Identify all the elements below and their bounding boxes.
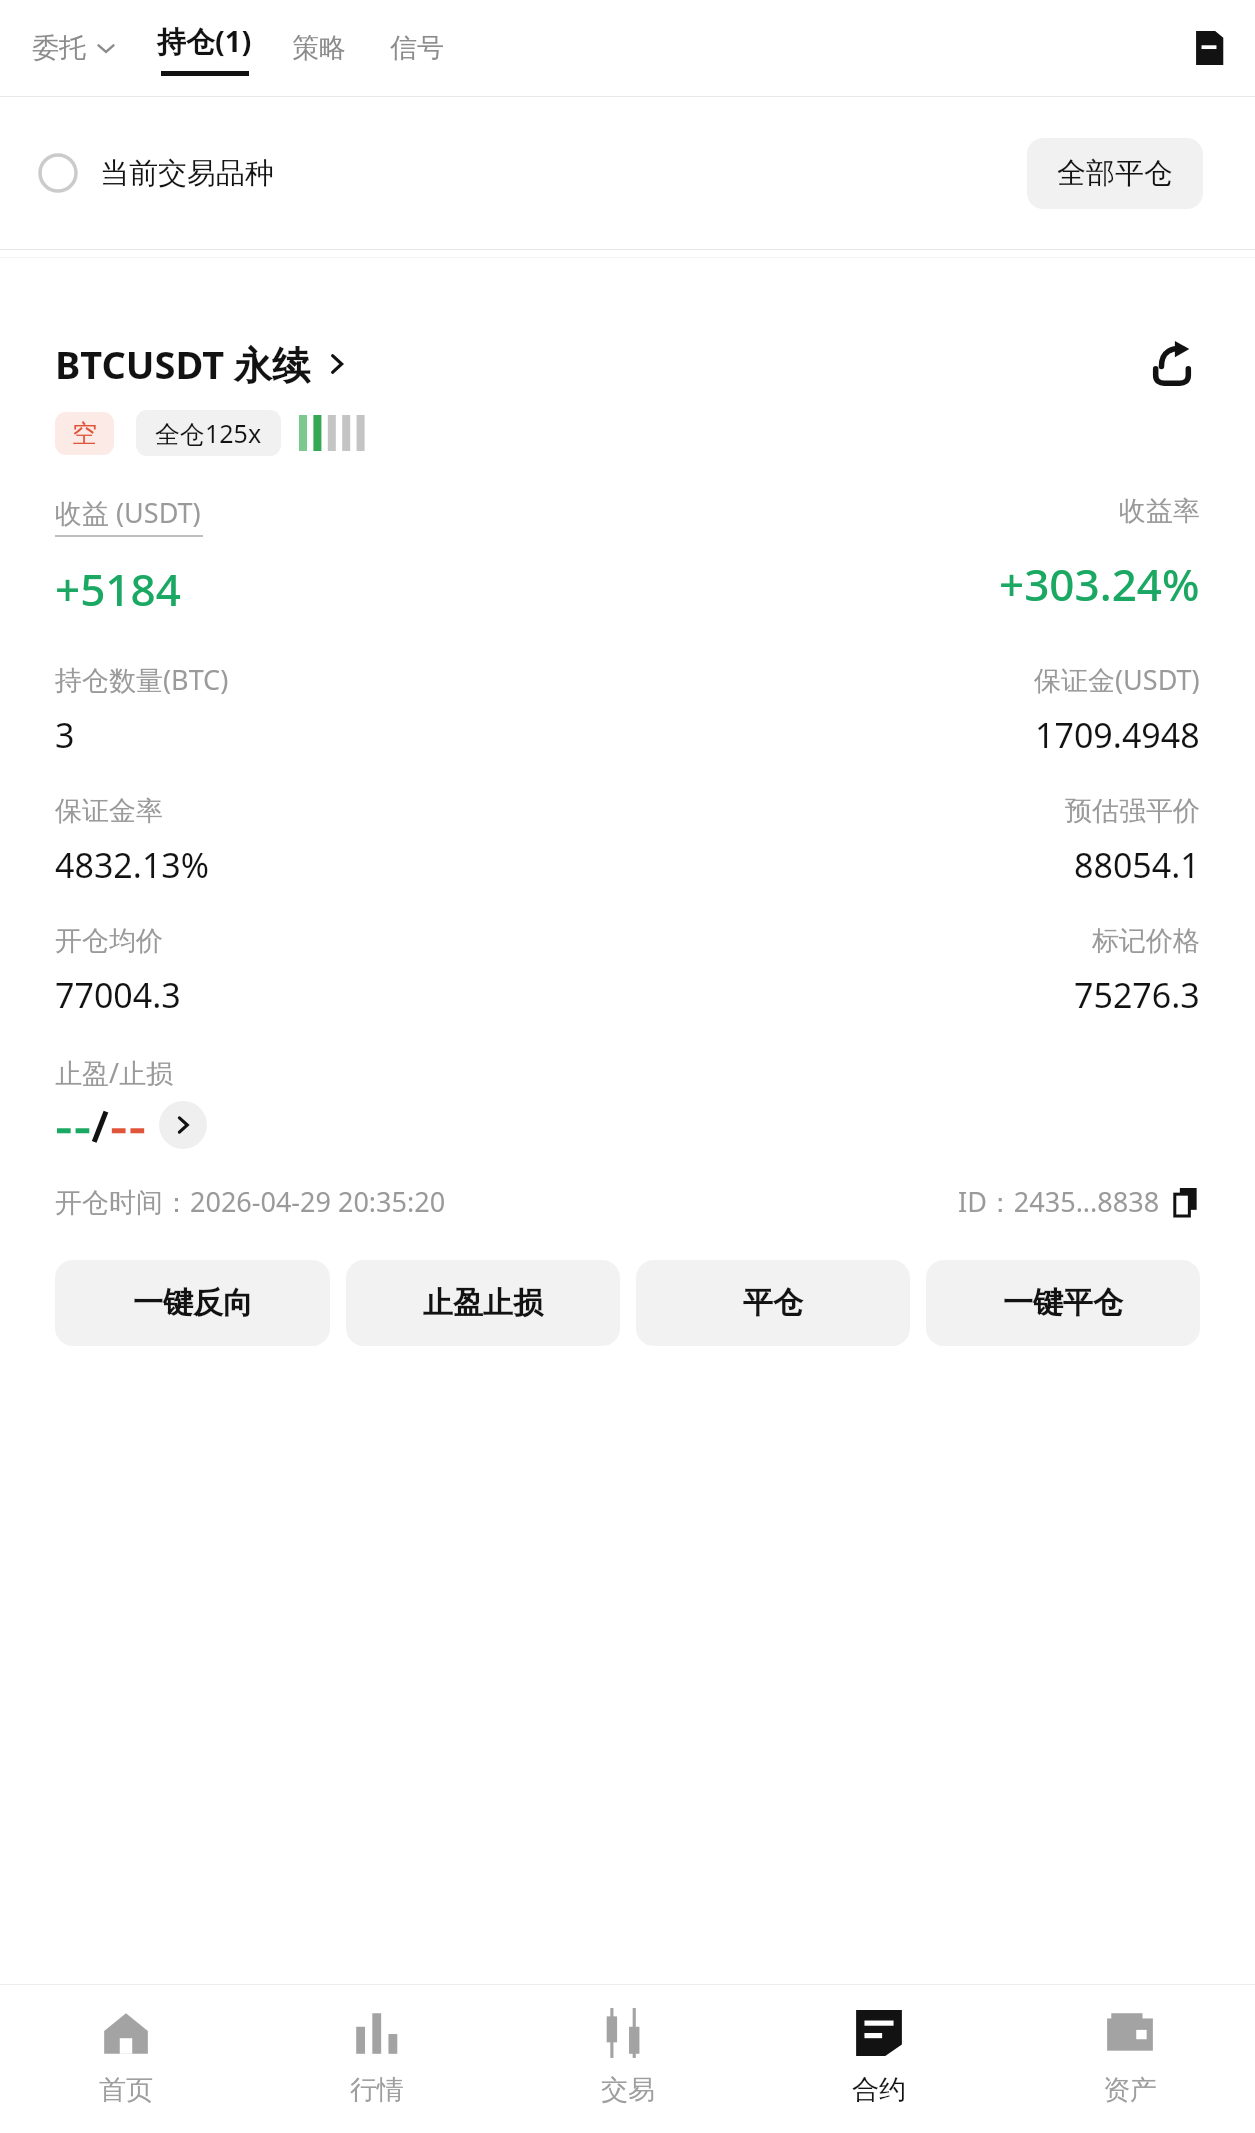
staticText: 当前交易品种	[100, 155, 274, 192]
button[interactable]: ID：2435...8838	[958, 1183, 1200, 1220]
staticText: 88054.1	[1074, 842, 1200, 888]
staticText: 保证金(USDT)	[1034, 661, 1200, 698]
staticText: 收益率	[1119, 494, 1200, 528]
staticText: 77004.3	[55, 972, 181, 1018]
staticText: 一键反向	[133, 1284, 253, 1322]
staticText: 平仓	[743, 1284, 803, 1322]
other: Edit take profit stop loss	[159, 1101, 207, 1149]
staticText: 止盈/止损	[55, 1054, 174, 1091]
staticText: 保证金率	[55, 794, 163, 828]
button[interactable]: 止盈止损	[346, 1260, 620, 1346]
staticText: 合约	[852, 2073, 906, 2107]
button[interactable]: 持仓(1)	[157, 21, 252, 76]
button[interactable]: Edit take profit stop loss	[55, 1101, 207, 1149]
staticText: 75276.3	[1074, 972, 1200, 1018]
other: Copy ID	[1172, 1188, 1200, 1216]
button[interactable]: 行情	[251, 1985, 502, 2133]
staticText: +303.24%	[999, 554, 1200, 614]
staticText: 资产	[1103, 2073, 1157, 2107]
button[interactable]: 委托	[28, 31, 121, 65]
staticText: 收益 (USDT)	[55, 494, 201, 531]
button[interactable]: Order records	[1187, 26, 1231, 70]
staticText: 交易	[601, 2073, 655, 2107]
staticText: 3	[55, 712, 75, 758]
staticText: 委托	[32, 31, 86, 65]
staticText: 空	[72, 418, 97, 449]
staticText: ID：2435...8838	[958, 1183, 1160, 1220]
staticText: 全仓125x	[155, 416, 262, 450]
button[interactable]: 策略	[288, 31, 350, 65]
button[interactable]: 一键反向	[55, 1260, 330, 1346]
button[interactable]: 信号	[386, 31, 448, 65]
staticText: 开仓时间：2026-04-29 20:35:20	[55, 1183, 446, 1220]
button[interactable]: Share	[1144, 336, 1200, 392]
staticText: 预估强平价	[1065, 794, 1200, 828]
staticText: 行情	[350, 2073, 404, 2107]
staticText: +5184	[55, 559, 181, 619]
staticText: 持仓(1)	[157, 21, 252, 61]
staticText: 4832.13%	[55, 842, 210, 888]
staticText: 一键平仓	[1003, 1284, 1123, 1322]
button[interactable]: 交易	[502, 1985, 753, 2133]
staticText: 开仓均价	[55, 924, 163, 958]
staticText: 持仓数量(BTC)	[55, 661, 229, 698]
button[interactable]: 资产	[1004, 1985, 1255, 2133]
staticText: 止盈止损	[423, 1284, 543, 1322]
staticText: 全部平仓	[1057, 155, 1173, 192]
button[interactable]: 收益 (USDT)	[55, 494, 203, 537]
button[interactable]: BTCUSDT 永续	[55, 338, 350, 390]
staticText: 标记价格	[1092, 924, 1200, 958]
staticText: 1709.4948	[1035, 712, 1200, 758]
button[interactable]: 一键平仓	[926, 1260, 1200, 1346]
staticText: BTCUSDT 永续	[55, 338, 310, 390]
button[interactable]: 平仓	[636, 1260, 910, 1346]
button[interactable]: 合约	[753, 1985, 1004, 2133]
button[interactable]: 首页	[0, 1985, 251, 2133]
button[interactable]: 当前交易品种	[38, 153, 274, 193]
button[interactable]: 全部平仓	[1027, 138, 1203, 209]
staticText: 首页	[99, 2073, 153, 2107]
